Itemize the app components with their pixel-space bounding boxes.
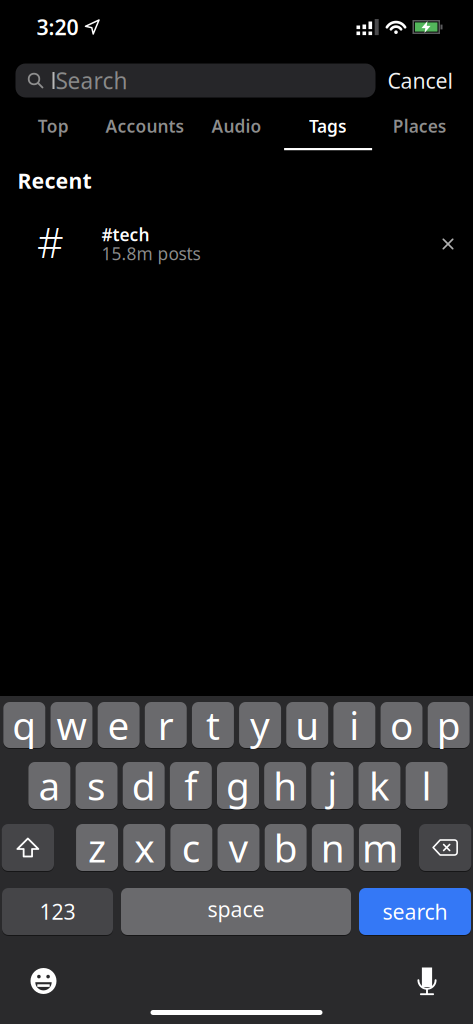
button[interactable]: search [359,888,471,935]
staticText: o [390,699,413,751]
staticText: v [228,822,248,873]
staticText: h [273,760,297,811]
button[interactable]: f [170,762,212,809]
button[interactable]: Remove [442,236,453,247]
button[interactable]: Emoji [30,968,56,994]
button[interactable]: a [28,762,70,809]
button[interactable]: n [312,824,354,871]
staticText: n [321,822,345,873]
staticText: Search [55,65,127,95]
button[interactable]: w [50,702,92,748]
button[interactable]: e [98,702,140,748]
staticText: y [250,699,270,751]
button[interactable]: s [76,762,118,809]
button[interactable]: g [217,762,259,809]
staticText: t [206,699,220,751]
button[interactable]: space [121,888,351,935]
button[interactable]: j [311,762,353,809]
button[interactable]: z [76,824,118,871]
staticText: l [422,760,432,811]
staticText: Audio [211,114,261,137]
staticText: z [88,822,106,873]
staticText: search [382,897,447,926]
button[interactable]: m [359,824,401,871]
staticText: b [274,822,298,873]
staticText: space [207,895,264,923]
staticText: w [56,699,86,751]
staticText: # [37,214,64,269]
button[interactable]: Search [15,63,375,97]
staticText: a [38,760,60,811]
staticText: 15.8m posts [101,242,200,265]
button[interactable]: Dictate [416,967,437,995]
button[interactable]: # [0,214,473,269]
staticText: r [158,699,174,751]
button[interactable]: t [192,702,234,748]
button[interactable]: l [406,762,448,809]
staticText: Places [393,114,447,137]
staticText: Cancel [387,66,453,95]
button[interactable]: Audio [191,114,282,150]
button[interactable]: p [428,702,470,748]
button[interactable]: c [170,824,212,871]
button[interactable]: Accounts [99,114,191,150]
staticText: q [12,699,36,751]
staticText: Accounts [105,114,184,137]
staticText: j [327,760,337,811]
button[interactable]: Top [7,114,99,150]
button[interactable]: 123 [2,888,113,935]
button[interactable]: h [264,762,306,809]
staticText: k [369,760,390,811]
staticText: f [184,760,197,811]
button[interactable]: x [123,824,165,871]
button[interactable]: y [239,702,281,748]
button[interactable]: Places [374,114,465,150]
button[interactable]: o [380,702,422,748]
staticText: g [226,760,250,811]
staticText: x [134,822,154,873]
staticText: d [132,760,156,811]
staticText: m [362,822,398,873]
staticText: Tags [309,114,347,137]
staticText: Recent [17,166,91,194]
staticText: c [182,822,201,873]
button[interactable]: i [333,702,375,748]
staticText: 123 [39,897,75,926]
staticText: e [108,699,130,751]
button[interactable]: r [145,702,187,748]
button[interactable]: Cancel [387,66,453,95]
button[interactable]: Delete [419,824,471,871]
staticText: u [295,699,319,751]
staticText: Top [38,114,69,137]
staticText: 3:20 [36,13,78,41]
staticText: p [437,699,461,751]
button[interactable]: k [358,762,400,809]
staticText: #tech [101,223,149,246]
button[interactable]: Tags [282,114,374,150]
button[interactable]: d [123,762,165,809]
button[interactable]: b [265,824,307,871]
staticText: i [349,699,359,751]
button[interactable]: u [286,702,328,748]
button[interactable]: q [3,702,45,748]
button[interactable]: Shift [2,824,54,871]
staticText: s [87,760,106,811]
button[interactable]: v [217,824,259,871]
